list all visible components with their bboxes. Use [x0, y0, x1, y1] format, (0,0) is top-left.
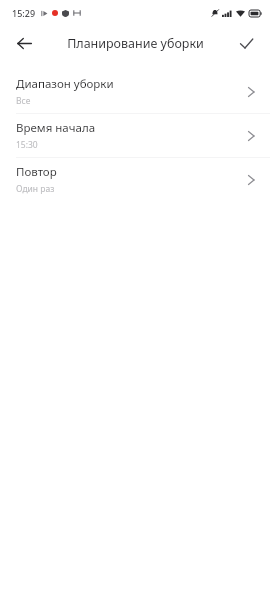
staticText: Время начала	[16, 120, 96, 136]
button[interactable]: Повтор	[0, 158, 270, 201]
staticText: 15:29	[12, 7, 36, 19]
button[interactable]: Время начала	[0, 114, 270, 157]
staticText: 15:30	[16, 139, 38, 151]
staticText: Повтор	[16, 164, 57, 180]
button[interactable]: Confirm	[230, 27, 262, 59]
staticText: Планирование уборки	[67, 35, 204, 52]
staticText: Все	[16, 95, 31, 107]
button[interactable]: Диапазон уборки	[0, 70, 270, 113]
staticText: Один раз	[16, 183, 55, 195]
button[interactable]: Back	[8, 27, 40, 59]
staticText: Диапазон уборки	[16, 76, 114, 92]
